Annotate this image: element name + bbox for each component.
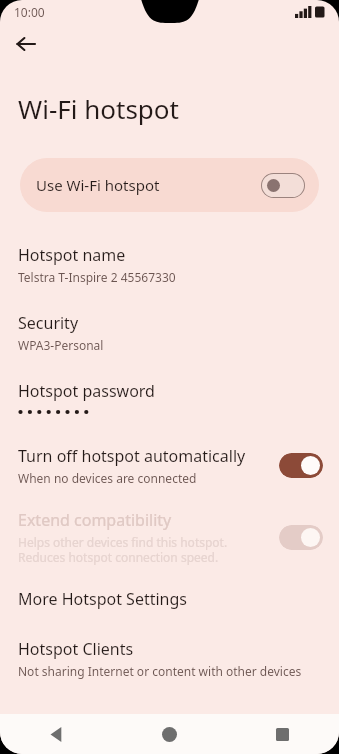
staticText: Hotspot Clients: [18, 638, 134, 660]
button[interactable]: Navigate up: [6, 24, 46, 64]
staticText: Security: [18, 312, 79, 334]
staticText: Hotspot password: [18, 380, 155, 402]
button[interactable]: Recents: [226, 714, 339, 754]
staticText: Helps other devices find this hotspot. R…: [18, 534, 228, 566]
staticText: Wi-Fi hotspot: [18, 91, 179, 126]
button[interactable]: Hotspot name: [0, 242, 339, 287]
staticText: Turn off hotspot automatically: [18, 445, 246, 467]
staticText: Not sharing Internet or content with oth…: [18, 663, 302, 679]
staticText: Hotspot name: [18, 244, 126, 266]
button[interactable]: Hotspot Clients: [0, 636, 339, 681]
button: Extend compatibility: [0, 507, 339, 568]
staticText: Telstra T-Inspire 2 45567330: [18, 269, 176, 285]
staticText: Use Wi-Fi hotspot: [36, 175, 261, 195]
button[interactable]: [261, 173, 305, 198]
button[interactable]: Hotspot password: [0, 378, 339, 417]
staticText: 10:00: [14, 4, 45, 20]
staticText: More Hotspot Settings: [18, 588, 187, 610]
button[interactable]: More Hotspot Settings: [0, 586, 339, 612]
button[interactable]: Home: [113, 714, 226, 754]
button[interactable]: Security: [0, 310, 339, 355]
staticText: Extend compatibility: [18, 509, 172, 531]
button[interactable]: Use Wi-Fi hotspot: [20, 158, 319, 212]
button[interactable]: Turn off hotspot automatically: [0, 443, 339, 488]
staticText: WPA3-Personal: [18, 337, 104, 353]
button[interactable]: Back: [0, 714, 113, 754]
button[interactable]: [279, 453, 323, 478]
staticText: When no devices are connected: [18, 470, 197, 486]
button: [279, 525, 323, 550]
